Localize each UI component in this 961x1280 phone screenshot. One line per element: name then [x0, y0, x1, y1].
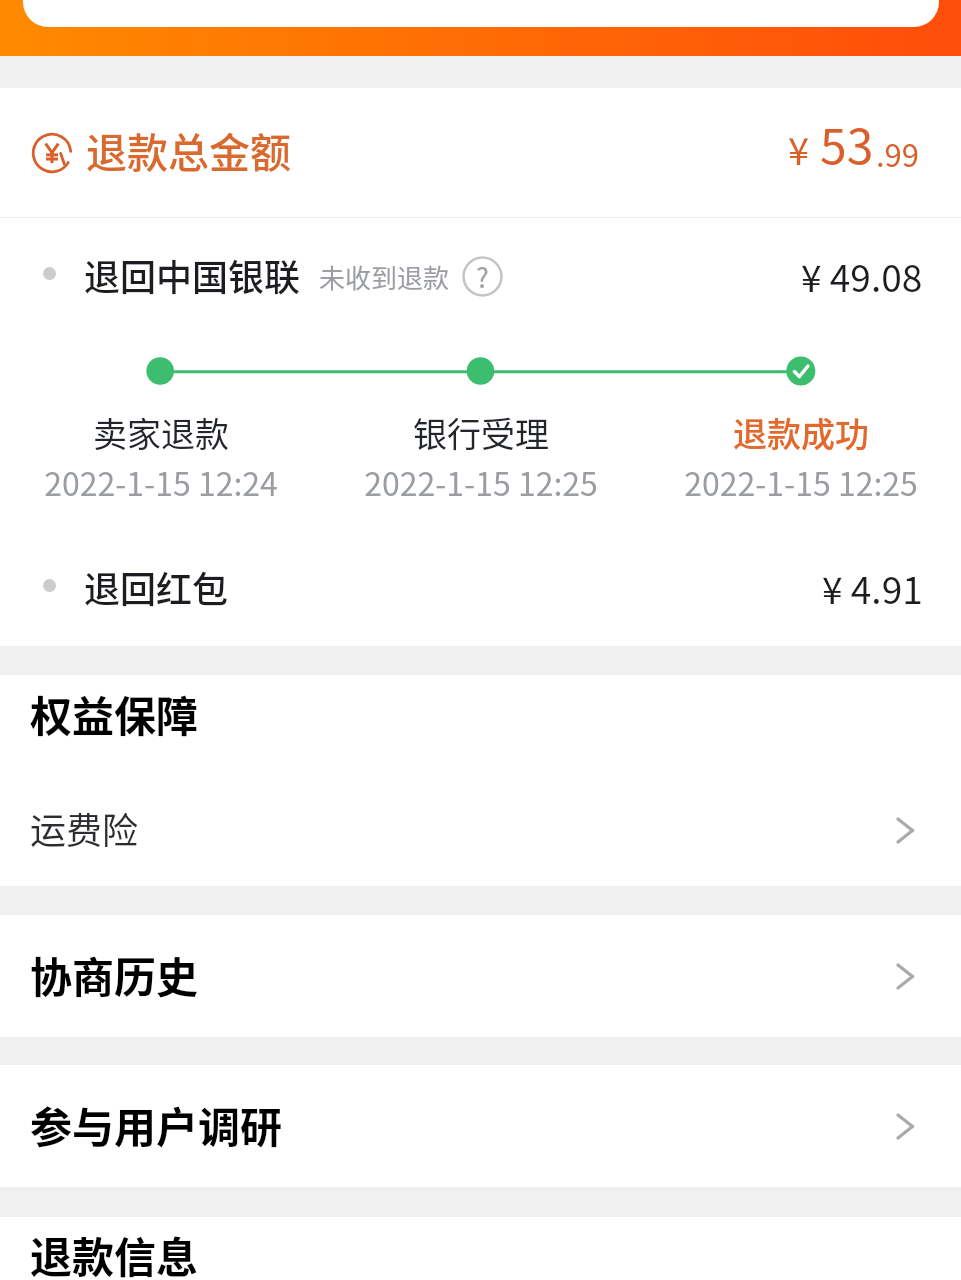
staticText: 未收到退款 — [319, 258, 450, 296]
staticText: ¥ 49.08 — [801, 249, 923, 303]
button[interactable]: 退回红包 — [0, 531, 961, 646]
staticText: 银行受理 — [413, 408, 549, 457]
staticText: 2022-1-15 12:25 — [684, 459, 918, 505]
staticText: 退款总金额 — [86, 120, 291, 179]
staticText: 退回红包 — [84, 561, 229, 613]
staticText: .99 — [876, 131, 920, 176]
staticText: 2022-1-15 12:24 — [44, 459, 278, 505]
button[interactable]: 退款总金额 — [0, 88, 961, 217]
staticText: 参与用户调研 — [30, 1094, 283, 1155]
staticText: 53 — [820, 108, 874, 178]
staticText: 退款信息 — [30, 1224, 199, 1280]
button[interactable]: 运费险 — [0, 775, 961, 886]
staticText: 2022-1-15 12:25 — [364, 459, 598, 505]
staticText: ¥ 4.91 — [822, 561, 923, 615]
staticText: ? — [476, 257, 489, 296]
staticText: 卖家退款 — [93, 408, 229, 457]
staticText: 退款成功 — [733, 408, 869, 457]
button[interactable]: 参与用户调研 — [0, 1065, 961, 1187]
staticText: 权益保障 — [30, 683, 199, 744]
staticText: 协商历史 — [30, 944, 199, 1005]
staticText: ¥ — [788, 121, 810, 176]
button[interactable]: 协商历史 — [0, 915, 961, 1037]
staticText: 退回中国银联 — [84, 249, 301, 301]
staticText: 运费险 — [30, 802, 139, 854]
button[interactable]: 退回中国银联 — [0, 218, 961, 335]
button[interactable]: Help — [462, 256, 503, 297]
